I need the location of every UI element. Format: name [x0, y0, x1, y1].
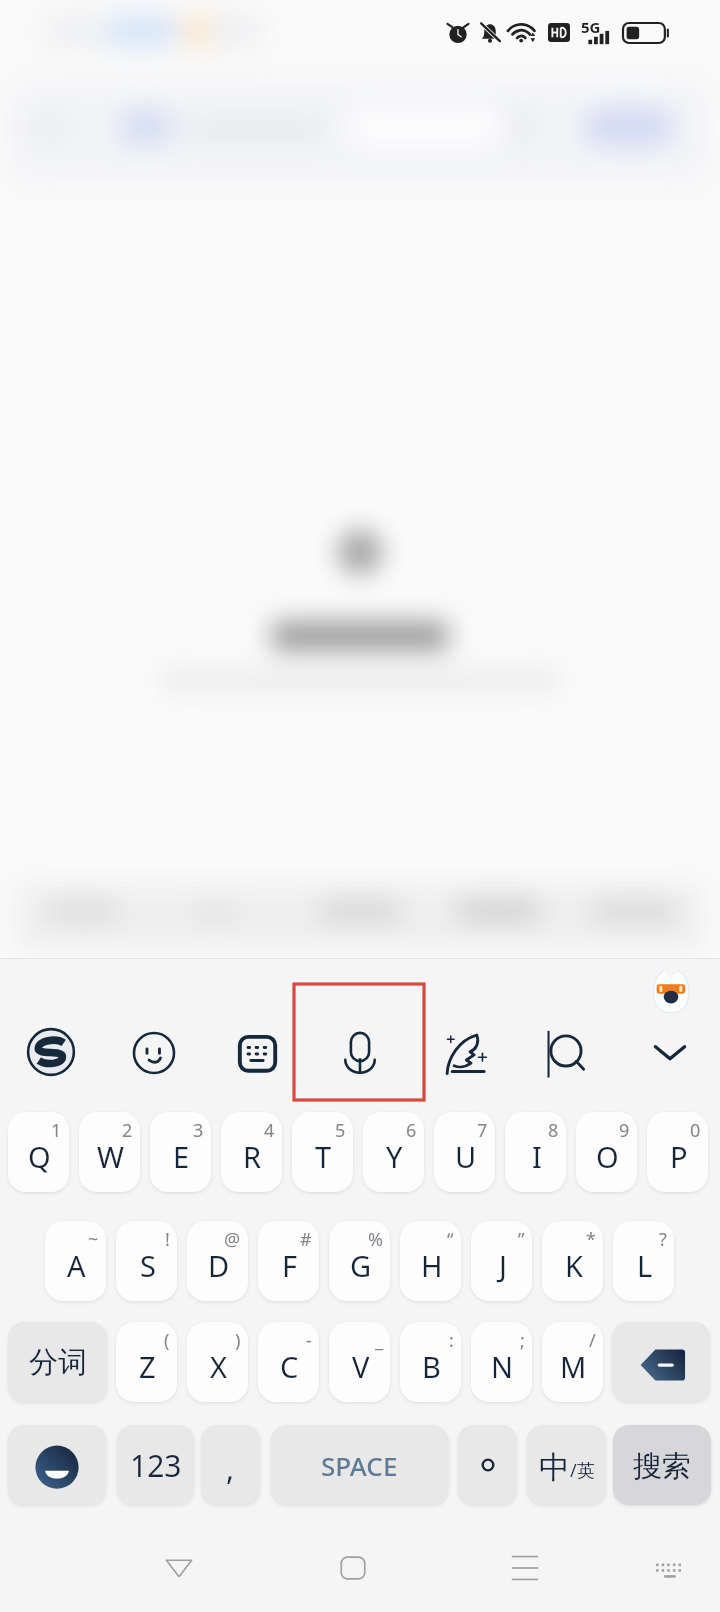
staticText: 中 — [539, 1448, 570, 1487]
button[interactable]: J — [471, 1221, 532, 1301]
staticText: @ — [224, 1227, 241, 1252]
staticText: R — [243, 1137, 262, 1176]
staticText: ; — [520, 1328, 525, 1353]
staticText: 搜索 — [633, 1448, 691, 1485]
staticText: “ — [447, 1227, 454, 1252]
button[interactable]: R — [221, 1112, 282, 1192]
button[interactable]: Z — [116, 1322, 177, 1402]
staticText: H — [421, 1246, 443, 1285]
button[interactable]: M — [542, 1322, 603, 1402]
staticText: A — [67, 1246, 86, 1285]
staticText: F — [282, 1246, 298, 1285]
button[interactable]: Home — [315, 1530, 391, 1606]
staticText: ? — [659, 1227, 667, 1252]
staticText: : — [449, 1328, 454, 1353]
button[interactable]: I — [505, 1112, 566, 1192]
button[interactable]: F — [258, 1221, 319, 1301]
button[interactable]: AI assistant — [644, 964, 698, 1018]
staticText: 5G — [581, 17, 601, 37]
staticText: 6 — [406, 1118, 417, 1143]
button[interactable]: Collapse keyboard — [619, 1000, 720, 1104]
button[interactable]: V — [329, 1322, 390, 1402]
button[interactable]: Y — [363, 1112, 424, 1192]
button[interactable]: Back — [141, 1530, 217, 1606]
staticText: J — [499, 1246, 507, 1285]
button[interactable]: 123 — [117, 1425, 194, 1505]
button[interactable]: 分词 — [8, 1322, 107, 1402]
staticText: /英 — [570, 1458, 595, 1483]
button[interactable]: Search — [613, 1425, 711, 1505]
staticText: N — [491, 1347, 514, 1386]
staticText: S — [140, 1246, 156, 1285]
staticText: ” — [518, 1227, 525, 1252]
staticText: E — [173, 1137, 190, 1176]
button[interactable]: A — [45, 1221, 106, 1301]
staticText: 9 — [619, 1118, 630, 1143]
staticText: 3 — [193, 1118, 204, 1143]
staticText: G — [350, 1246, 372, 1285]
button[interactable]: N — [471, 1322, 532, 1402]
button[interactable]: O — [576, 1112, 637, 1192]
button[interactable]: Q — [8, 1112, 69, 1192]
staticText: 5 — [335, 1118, 346, 1143]
button[interactable]: G — [329, 1221, 390, 1301]
staticText: ) — [235, 1328, 241, 1353]
staticText: # — [300, 1227, 312, 1252]
button[interactable]: E — [150, 1112, 211, 1192]
button[interactable]: Comma — [201, 1425, 260, 1505]
staticText: 0 — [690, 1118, 701, 1143]
staticText: X — [210, 1347, 227, 1386]
staticText: T — [315, 1137, 332, 1176]
button[interactable]: Backspace — [612, 1322, 710, 1402]
staticText: 7 — [477, 1118, 488, 1143]
staticText: * — [586, 1227, 596, 1252]
button[interactable]: Sogou input — [0, 1000, 102, 1104]
staticText: Y — [386, 1137, 403, 1176]
staticText: O — [596, 1137, 619, 1176]
button[interactable]: Handwriting — [413, 1000, 515, 1104]
button[interactable]: K — [542, 1221, 603, 1301]
staticText: V — [352, 1347, 370, 1386]
button[interactable]: B — [400, 1322, 461, 1402]
staticText: Z — [139, 1347, 156, 1386]
button[interactable]: U — [434, 1112, 495, 1192]
staticText: 123 — [130, 1445, 182, 1486]
button[interactable]: L — [613, 1221, 674, 1301]
button[interactable]: C — [258, 1322, 319, 1402]
staticText: % — [368, 1227, 383, 1252]
button[interactable]: Voice input — [309, 1000, 411, 1104]
button[interactable]: Search — [516, 1000, 618, 1104]
staticText: U — [455, 1137, 477, 1176]
staticText: 4 — [264, 1118, 275, 1143]
staticText: M — [560, 1347, 587, 1386]
staticText: _ — [375, 1328, 383, 1353]
button[interactable]: Period — [458, 1425, 517, 1505]
staticText: W — [97, 1137, 124, 1176]
button[interactable]: Chinese English toggle — [527, 1425, 606, 1505]
button[interactable]: Recent apps — [487, 1530, 563, 1606]
staticText: / — [589, 1328, 596, 1353]
button[interactable]: T — [292, 1112, 353, 1192]
button[interactable]: P — [647, 1112, 708, 1192]
staticText: C — [280, 1347, 299, 1386]
button[interactable]: D — [187, 1221, 248, 1301]
staticText: 8 — [548, 1118, 559, 1143]
button[interactable]: X — [187, 1322, 248, 1402]
staticText: SPACE — [321, 1448, 398, 1483]
staticText: B — [422, 1347, 441, 1386]
staticText: D — [208, 1246, 230, 1285]
staticText: L — [637, 1246, 653, 1285]
button[interactable]: Hide keyboard — [632, 1530, 708, 1606]
staticText: K — [565, 1246, 583, 1285]
button[interactable]: H — [400, 1221, 461, 1301]
staticText: ~ — [88, 1227, 99, 1252]
button[interactable]: Emoji panel — [8, 1425, 106, 1505]
button[interactable]: Keyboard layout — [206, 1000, 308, 1104]
button[interactable]: Emoji — [103, 1000, 205, 1104]
button[interactable]: S — [116, 1221, 177, 1301]
staticText: - — [306, 1328, 312, 1353]
staticText: , — [226, 1448, 235, 1489]
button[interactable]: W — [79, 1112, 140, 1192]
button[interactable]: Space — [271, 1425, 448, 1505]
staticText: 分词 — [29, 1344, 87, 1381]
